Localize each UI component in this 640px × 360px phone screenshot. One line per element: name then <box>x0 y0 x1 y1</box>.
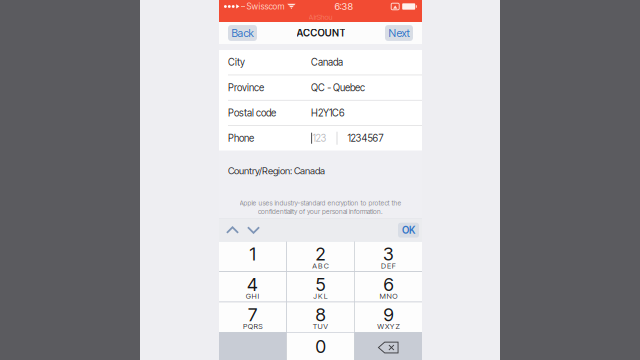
staticText: OK <box>402 224 415 236</box>
staticText: DEF <box>381 261 396 270</box>
staticText: Postal code <box>228 107 276 119</box>
staticText: QC - Quebec <box>311 82 365 93</box>
button[interactable]: 1 <box>219 242 286 271</box>
button[interactable]: 3 <box>355 242 422 271</box>
staticText: 4 <box>247 273 258 295</box>
staticText: Canada <box>311 56 343 68</box>
staticText: 1234567 <box>347 132 383 144</box>
button[interactable]: Delete <box>355 333 422 360</box>
staticText: Phone <box>228 132 254 144</box>
staticText: TUV <box>313 322 328 331</box>
staticText: GHI <box>246 291 259 300</box>
button[interactable]: 5 <box>287 272 354 302</box>
staticText: Next <box>388 26 409 39</box>
button[interactable]: Next <box>385 25 413 41</box>
button[interactable]: 6 <box>355 272 422 302</box>
button[interactable]: Next field <box>243 219 264 242</box>
staticText: JKL <box>313 291 328 300</box>
staticText: 0 <box>315 336 325 357</box>
staticText: PQRS <box>243 322 262 331</box>
staticText: Swisscom <box>247 1 285 12</box>
staticText: Country/Region: Canada <box>228 165 325 176</box>
button[interactable]: OK <box>398 223 419 238</box>
button[interactable]: 7 <box>219 302 286 332</box>
button[interactable]: 2 <box>287 242 354 271</box>
button[interactable]: 4 <box>219 272 286 302</box>
staticText: confidentiality of your personal informa… <box>258 207 383 216</box>
button[interactable]: Back <box>228 25 257 41</box>
staticText: 3 <box>383 243 394 265</box>
staticText: MNO <box>380 291 397 300</box>
staticText: 6 <box>383 273 393 295</box>
staticText: 6:38 <box>334 1 352 12</box>
staticText: 9 <box>383 304 393 326</box>
staticText: 5 <box>315 273 325 295</box>
staticText: ACCOUNT <box>297 27 345 39</box>
button[interactable]: 0 <box>287 333 354 360</box>
staticText: 1 <box>250 243 256 265</box>
staticText: 7 <box>248 304 257 326</box>
staticText: WXYZ <box>377 322 400 331</box>
staticText: 2 <box>315 243 325 265</box>
button[interactable]: Previous field <box>222 219 243 242</box>
staticText: H2Y1C6 <box>311 107 345 119</box>
staticText: 8 <box>315 304 325 326</box>
button[interactable]: 9 <box>355 302 422 332</box>
staticText: Province <box>228 82 264 93</box>
button[interactable]: 8 <box>287 302 354 332</box>
staticText: ABC <box>312 261 329 270</box>
staticText: Back <box>231 26 253 39</box>
staticText: 123 <box>313 132 327 144</box>
staticText: City <box>228 56 245 68</box>
staticText: AirShou <box>308 12 332 21</box>
staticText: Apple uses industry-standard encryption … <box>239 199 401 207</box>
